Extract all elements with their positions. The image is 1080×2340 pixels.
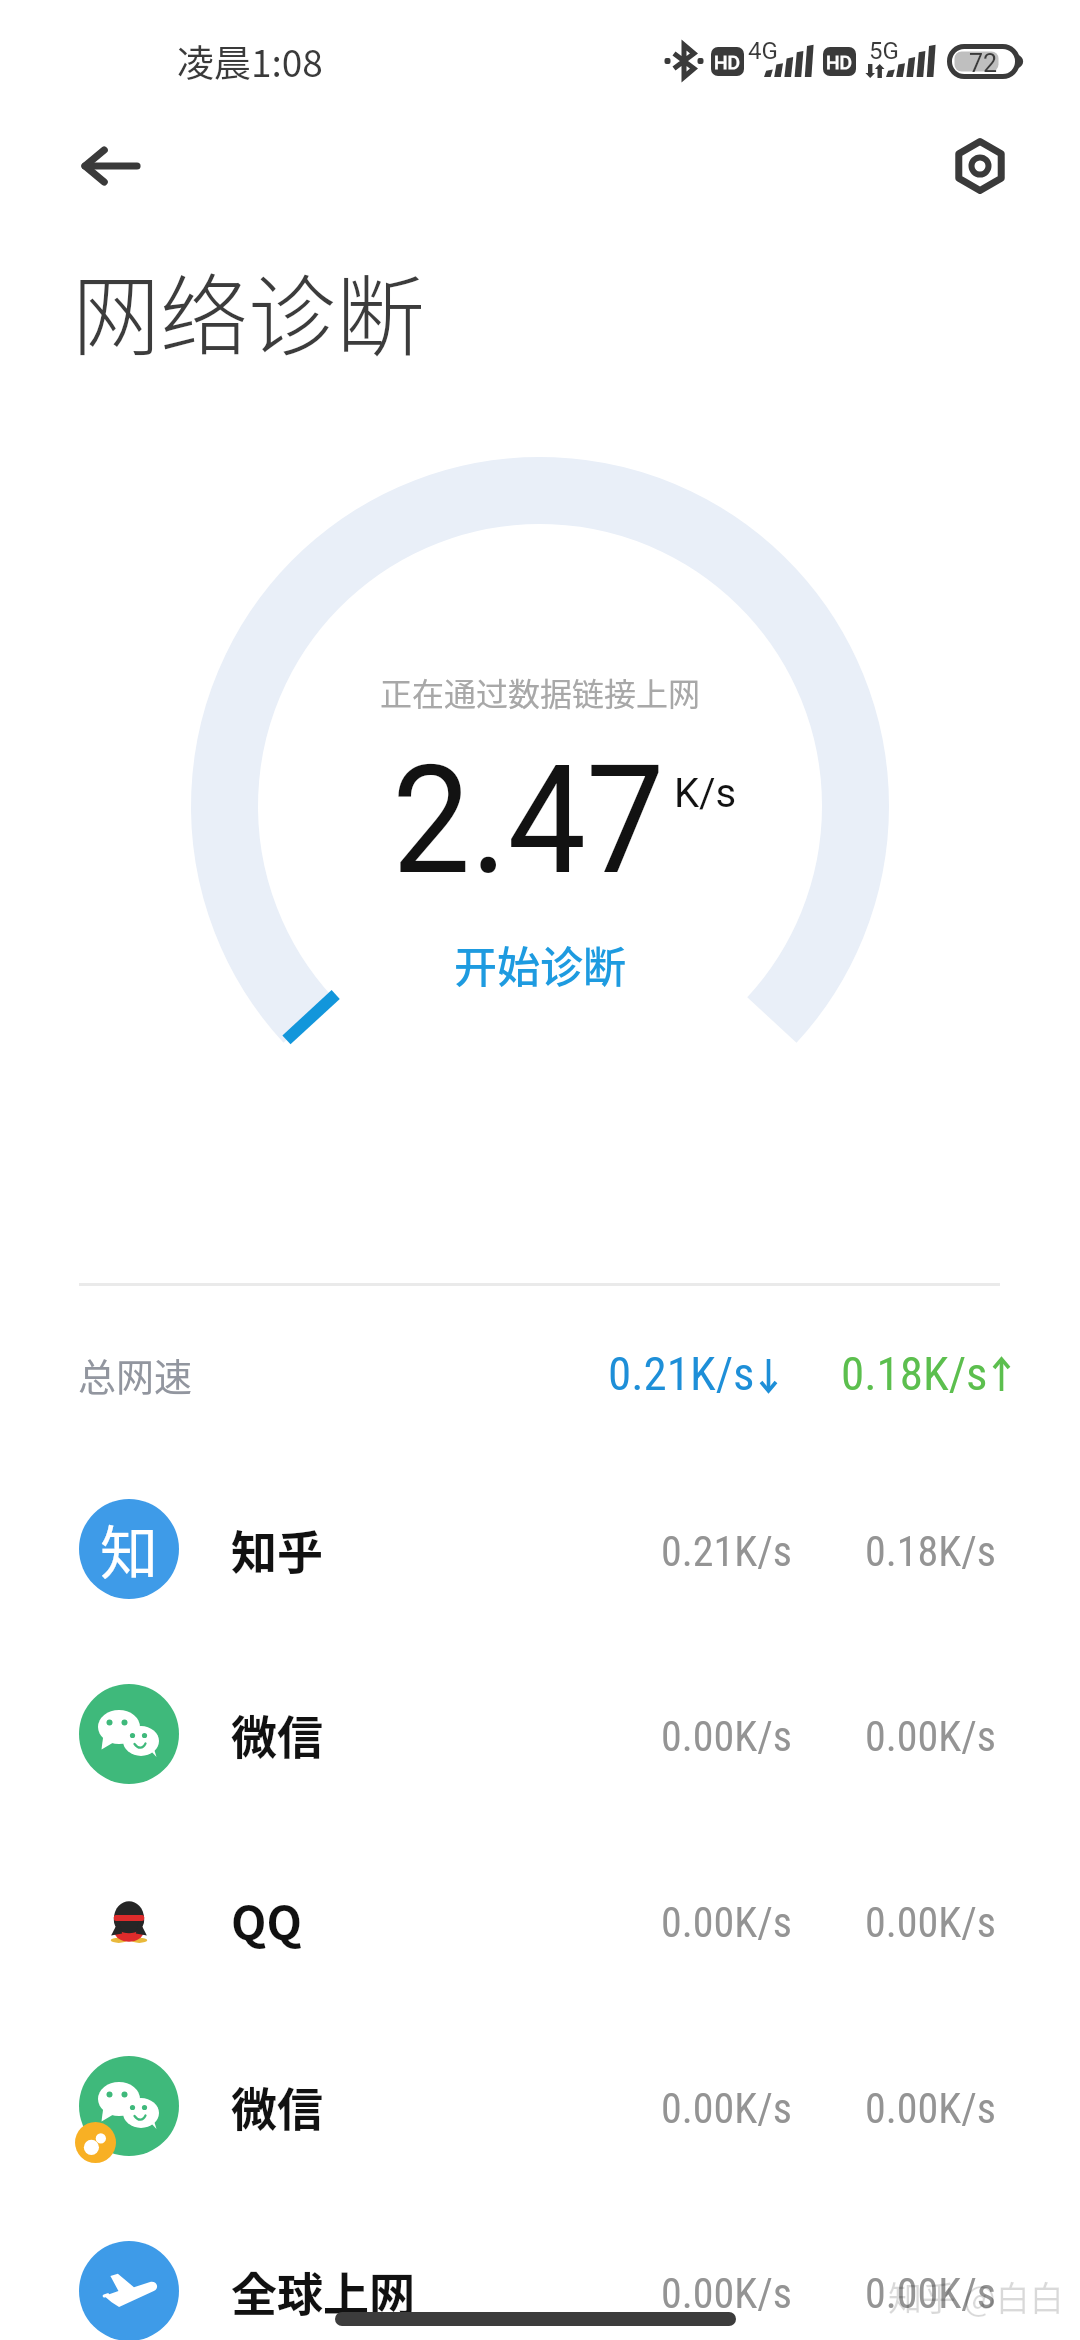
button[interactable]: 全球上网 <box>0 2199 1080 2340</box>
staticText: 0.00K/s <box>865 1898 996 1947</box>
button[interactable]: Settings <box>930 116 1030 216</box>
staticText: K/s <box>674 770 737 817</box>
staticText: 微信 <box>231 2073 323 2140</box>
staticText: 知乎 @白白 <box>888 2272 1064 2321</box>
staticText: 0.00K/s <box>865 2084 996 2133</box>
staticText: HD <box>826 51 853 73</box>
staticText: 0.00K/s <box>661 1898 792 1947</box>
staticText: 0.00K/s <box>865 1712 996 1761</box>
button[interactable]: Back <box>60 116 160 216</box>
staticText: HD <box>714 51 741 73</box>
staticText: 网络诊断 <box>72 246 425 373</box>
staticText: 开始诊断 <box>454 933 626 995</box>
staticText: 0.21K/s <box>661 1527 792 1576</box>
button[interactable]: QQ <box>0 1828 1080 2012</box>
staticText: 0.00K/s <box>865 2269 996 2318</box>
staticText: 凌晨1:08 <box>177 34 323 88</box>
staticText: 微信 <box>231 1701 323 1768</box>
staticText: QQ <box>231 1887 302 1954</box>
button[interactable]: 微信 <box>0 1642 1080 1826</box>
staticText: 正在通过数据链接上网 <box>380 669 701 715</box>
staticText: 0.21K/s <box>608 1346 755 1401</box>
staticText: 0.00K/s <box>661 1712 792 1761</box>
staticText: 4G <box>748 37 778 65</box>
staticText: 0.00K/s <box>661 2269 792 2318</box>
button[interactable]: 开始诊断 <box>430 925 650 1003</box>
staticText: 全球上网 <box>231 2258 415 2325</box>
staticText: 0.18K/s <box>865 1527 996 1576</box>
staticText: 知乎 <box>231 1516 323 1583</box>
staticText: 总网速 <box>78 1347 193 1402</box>
staticText: 0.18K/s <box>841 1346 988 1401</box>
button[interactable]: 知 <box>0 1457 1080 1641</box>
staticText: 0.00K/s <box>661 2084 792 2133</box>
staticText: 2.47 <box>392 733 665 909</box>
staticText: 5G <box>869 37 899 65</box>
button[interactable]: 微信 <box>0 2014 1080 2198</box>
staticText: 72 <box>969 49 998 78</box>
staticText: 知 <box>100 1507 159 1591</box>
